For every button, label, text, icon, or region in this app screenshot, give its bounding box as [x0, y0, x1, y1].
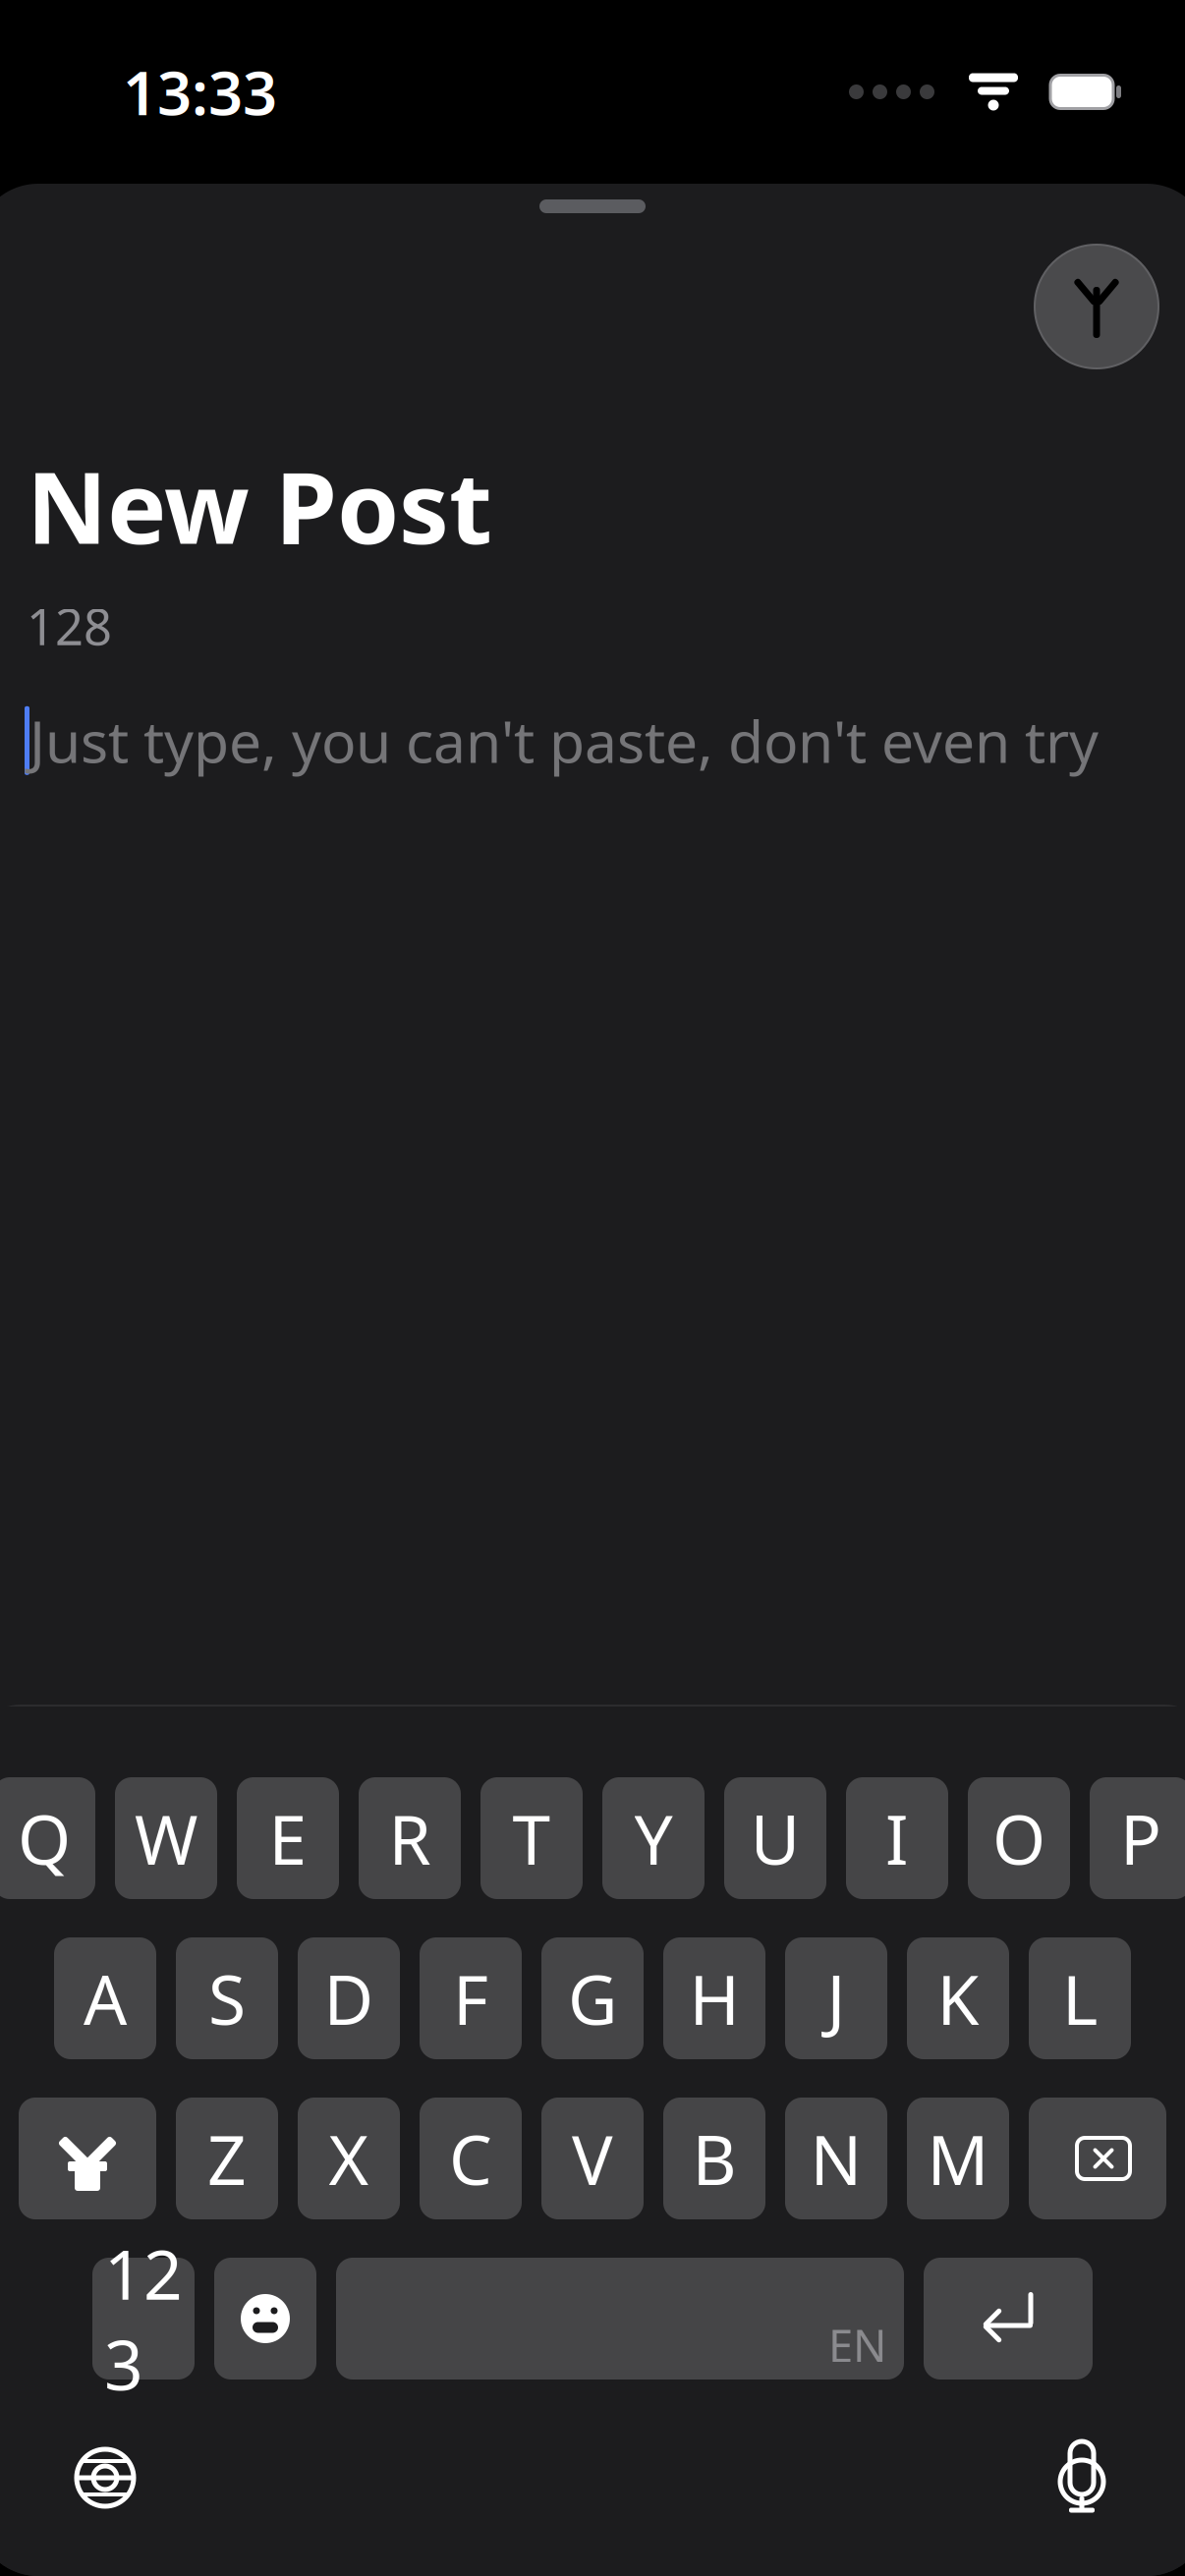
- staticText: C: [449, 2113, 492, 2204]
- button[interactable]: V: [541, 2098, 644, 2219]
- staticText: E: [269, 1793, 307, 1883]
- button[interactable]: T: [480, 1777, 583, 1899]
- staticText: H: [689, 1953, 739, 2044]
- staticText: K: [937, 1953, 979, 2044]
- button[interactable]: G: [541, 1937, 644, 2059]
- button[interactable]: B: [663, 2098, 765, 2219]
- staticText: B: [692, 2113, 736, 2204]
- button[interactable]: return: [924, 2258, 1093, 2380]
- staticText: Z: [207, 2113, 247, 2204]
- button[interactable]: K: [907, 1937, 1009, 2059]
- staticText: Y: [634, 1793, 673, 1883]
- button[interactable]: D: [298, 1937, 400, 2059]
- button[interactable]: Next keyboard: [74, 2446, 137, 2509]
- staticText: S: [208, 1953, 246, 2044]
- staticText: 13:33: [123, 52, 277, 132]
- button[interactable]: I: [846, 1777, 948, 1899]
- staticText: J: [827, 1953, 846, 2044]
- button[interactable]: Delete: [1029, 2098, 1166, 2219]
- button[interactable]: O: [968, 1777, 1070, 1899]
- button[interactable]: C: [420, 2098, 522, 2219]
- staticText: M: [927, 2113, 989, 2204]
- button[interactable]: Q: [0, 1777, 95, 1899]
- button[interactable]: P: [1090, 1777, 1185, 1899]
- button[interactable]: M: [907, 2098, 1009, 2219]
- staticText: 123: [104, 2228, 183, 2409]
- staticText: D: [324, 1953, 374, 2044]
- button[interactable]: Z: [176, 2098, 278, 2219]
- staticText: R: [389, 1793, 431, 1883]
- button[interactable]: E: [237, 1777, 339, 1899]
- button[interactable]: F: [420, 1937, 522, 2059]
- staticText: Just type, you can't paste, don't even t…: [29, 702, 1099, 779]
- staticText: New Post: [27, 439, 492, 571]
- button[interactable]: W: [115, 1777, 217, 1899]
- button[interactable]: space: [336, 2258, 904, 2380]
- button[interactable]: U: [724, 1777, 826, 1899]
- staticText: T: [512, 1793, 551, 1883]
- button[interactable]: R: [359, 1777, 461, 1899]
- button[interactable]: Post: [1035, 245, 1158, 368]
- staticText: F: [453, 1953, 488, 2044]
- button[interactable]: Dictate: [1052, 2440, 1111, 2515]
- staticText: V: [572, 2113, 613, 2204]
- button[interactable]: A: [54, 1937, 156, 2059]
- staticText: P: [1120, 1793, 1161, 1883]
- staticText: U: [750, 1793, 800, 1883]
- staticText: O: [992, 1793, 1045, 1883]
- button[interactable]: 123: [92, 2258, 195, 2380]
- staticText: N: [810, 2113, 862, 2204]
- staticText: G: [568, 1953, 617, 2044]
- button[interactable]: S: [176, 1937, 278, 2059]
- button[interactable]: L: [1029, 1937, 1131, 2059]
- button[interactable]: H: [663, 1937, 765, 2059]
- button[interactable]: Shift: [19, 2098, 156, 2219]
- staticText: A: [84, 1953, 127, 2044]
- staticText: Q: [18, 1793, 71, 1883]
- button[interactable]: N: [785, 2098, 887, 2219]
- staticText: L: [1062, 1953, 1098, 2044]
- staticText: W: [135, 1793, 197, 1883]
- staticText: I: [885, 1793, 909, 1883]
- button[interactable]: X: [298, 2098, 400, 2219]
- staticText: EN: [828, 2315, 886, 2375]
- staticText: X: [329, 2113, 369, 2204]
- button[interactable]: Y: [602, 1777, 705, 1899]
- button[interactable]: Emoji: [214, 2258, 316, 2380]
- button[interactable]: J: [785, 1937, 887, 2059]
- staticText: 128: [27, 593, 112, 659]
